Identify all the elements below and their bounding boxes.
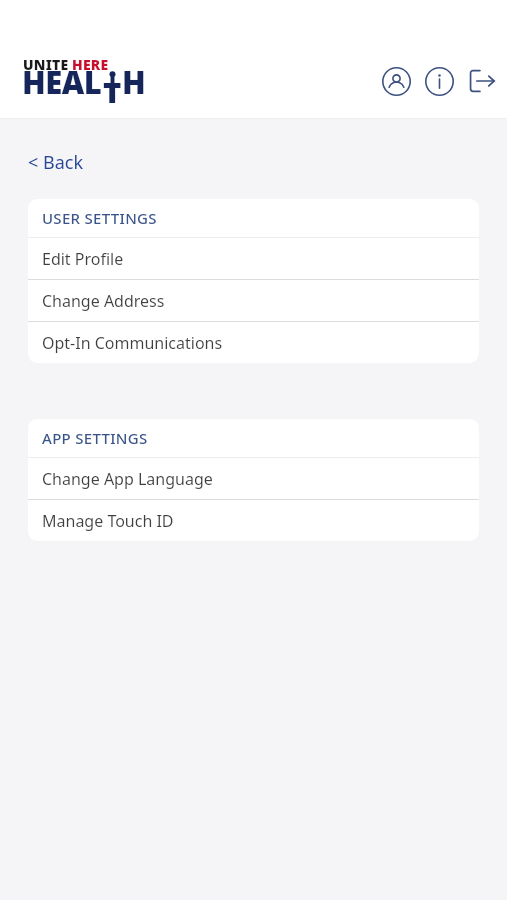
button[interactable]: APP SETTINGS: [28, 419, 479, 457]
button[interactable]: Change Address: [28, 280, 479, 321]
button[interactable]: USER SETTINGS: [28, 199, 479, 237]
staticText: Change Address: [42, 290, 165, 312]
button[interactable]: < Back: [20, 146, 92, 179]
staticText: Opt-In Communications: [42, 332, 223, 354]
button[interactable]: Information: [424, 66, 454, 96]
button[interactable]: Log out: [467, 66, 497, 96]
button[interactable]: Change App Language: [28, 458, 479, 499]
staticText: H: [122, 61, 146, 103]
button[interactable]: Manage Touch ID: [28, 500, 479, 541]
staticText: UNITE: [23, 55, 69, 74]
staticText: Edit Profile: [42, 248, 124, 270]
staticText: Change App Language: [42, 468, 213, 490]
button[interactable]: Opt-In Communications: [28, 322, 479, 363]
staticText: HERE: [72, 55, 109, 74]
button[interactable]: Edit Profile: [28, 238, 479, 279]
staticText: < Back: [28, 150, 84, 175]
staticText: Manage Touch ID: [42, 510, 174, 532]
staticText: T: [103, 73, 122, 103]
button[interactable]: Account: [381, 66, 411, 96]
staticText: USER SETTINGS: [42, 208, 157, 228]
staticText: APP SETTINGS: [42, 428, 148, 448]
staticText: HEAL: [22, 61, 102, 103]
